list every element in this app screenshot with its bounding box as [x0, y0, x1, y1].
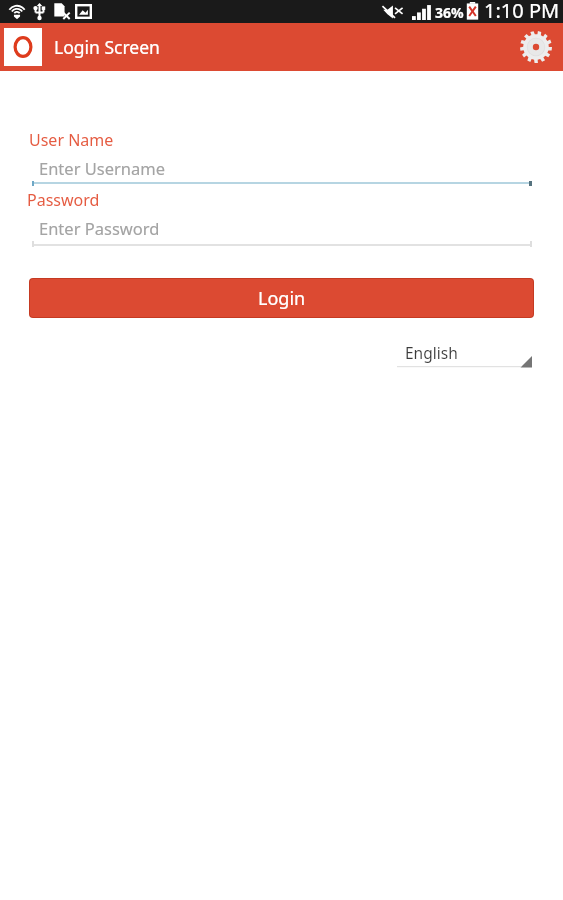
button[interactable]: Login	[30, 279, 533, 317]
staticText: User Name	[29, 129, 114, 151]
staticText: English	[405, 342, 458, 363]
staticText: Password	[27, 189, 100, 211]
button[interactable]: App logo	[4, 28, 42, 66]
staticText: 1:10 PM	[484, 0, 560, 20]
button[interactable]: English	[397, 341, 532, 371]
staticText: 36%	[435, 3, 464, 22]
staticText: Login Screen	[54, 35, 160, 59]
button[interactable]: Enter Password	[32, 213, 532, 246]
staticText: Enter Username	[39, 157, 166, 179]
button[interactable]: Settings	[512, 23, 560, 71]
button[interactable]: Enter Username	[32, 153, 532, 186]
staticText: Enter Password	[39, 217, 160, 239]
staticText: Login	[258, 286, 306, 311]
